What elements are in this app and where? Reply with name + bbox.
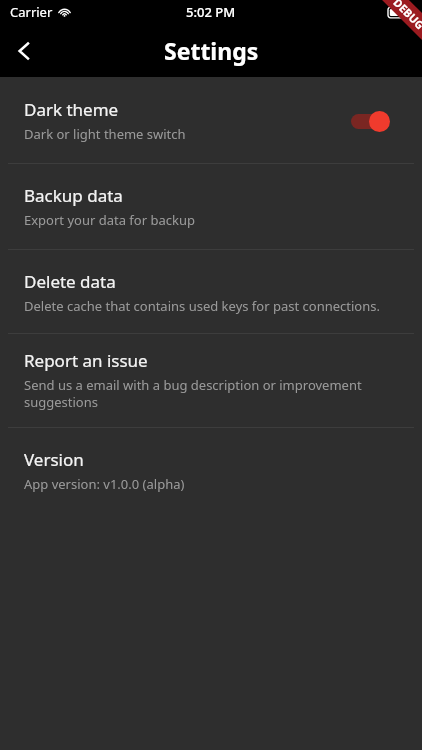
button[interactable]: Backup data bbox=[0, 164, 422, 249]
staticText: Dark theme bbox=[24, 98, 119, 121]
staticText: Delete cache that contains used keys for… bbox=[24, 297, 380, 315]
staticText: DEBUG bbox=[390, 0, 422, 32]
staticText: Carrier bbox=[10, 3, 53, 21]
staticText: Send us a email with a bug description o… bbox=[24, 376, 402, 411]
staticText: Report an issue bbox=[24, 349, 148, 372]
button[interactable]: Dark theme bbox=[0, 77, 422, 163]
button[interactable]: Back bbox=[0, 27, 48, 75]
staticText: Delete data bbox=[24, 270, 116, 293]
button[interactable]: Dark theme switch bbox=[350, 104, 402, 138]
staticText: App version: v1.0.0 (alpha) bbox=[24, 475, 185, 493]
button[interactable]: Report an issue bbox=[0, 334, 422, 427]
button[interactable]: Delete data bbox=[0, 250, 422, 333]
staticText: Settings bbox=[164, 35, 259, 66]
staticText: Backup data bbox=[24, 184, 123, 207]
button[interactable]: Version bbox=[0, 428, 422, 513]
staticText: Version bbox=[24, 448, 84, 471]
staticText: Export your data for backup bbox=[24, 211, 195, 229]
staticText: 5:02 PM bbox=[186, 3, 236, 21]
staticText: Dark or light theme switch bbox=[24, 125, 186, 143]
